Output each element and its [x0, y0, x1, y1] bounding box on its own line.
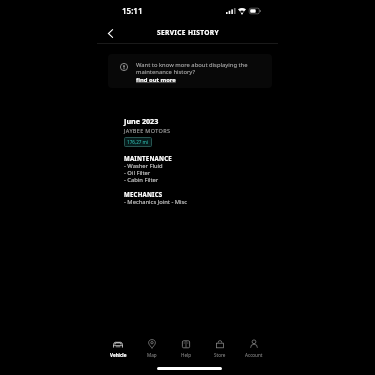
staticText: JAYBEE MOTORS [124, 127, 171, 134]
staticText: SERVICE HISTORY [157, 28, 219, 37]
button[interactable]: Vehicle [105, 339, 131, 358]
staticText: Map [147, 352, 157, 358]
button[interactable]: Store [207, 339, 233, 358]
staticText: - Mechanics Joint - Misc [124, 198, 188, 206]
staticText: Store [214, 352, 226, 358]
staticText: - Washer Fluid [124, 162, 163, 170]
button[interactable]: Account [241, 339, 267, 358]
button[interactable]: Want to know more about displaying the m… [108, 54, 272, 88]
button[interactable]: find out more [136, 76, 176, 84]
staticText: MECHANICS [124, 190, 163, 198]
staticText: Vehicle [110, 352, 127, 358]
staticText: - Oil Filter [124, 169, 151, 177]
staticText: 176,27 mi [127, 139, 149, 145]
button[interactable]: Back [103, 26, 117, 40]
staticText: Account [245, 352, 263, 358]
staticText: June 2023 [124, 116, 159, 126]
staticText: - Cabin Filter [124, 176, 159, 184]
staticText: Want to know more about displaying the m… [136, 61, 248, 76]
button[interactable]: Map [139, 339, 165, 358]
staticText: 15:11 [122, 5, 143, 16]
button[interactable]: Help [173, 339, 199, 358]
staticText: MAINTENANCE [124, 154, 172, 162]
staticText: Help [181, 352, 192, 358]
